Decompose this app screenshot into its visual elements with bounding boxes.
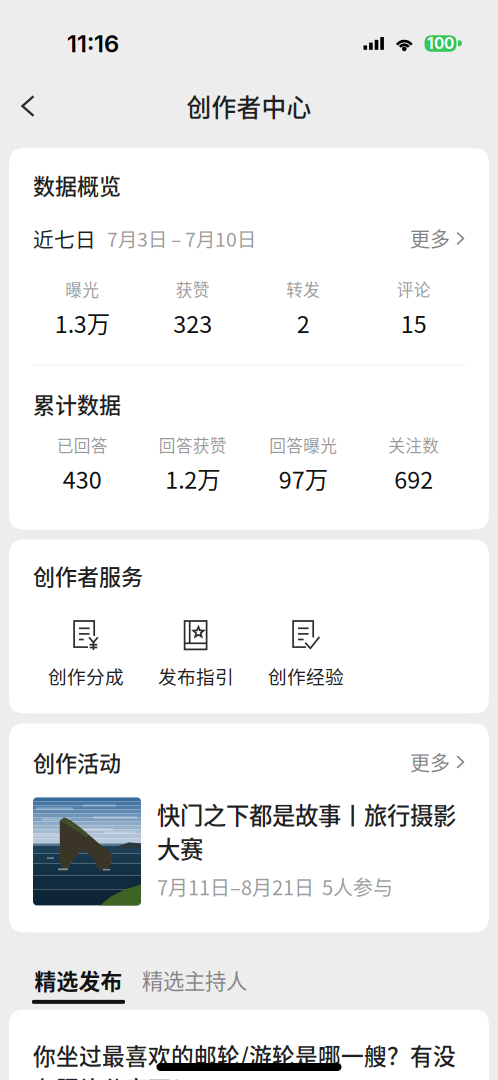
staticText: 692 [394, 462, 433, 496]
staticText: 创作经验 [268, 662, 344, 689]
staticText: 创作活动 [33, 746, 121, 778]
staticText: 获赞 [176, 277, 210, 301]
staticText: 精选发布 [34, 964, 122, 996]
staticText: 精选主持人 [142, 964, 247, 995]
staticText: 97万 [279, 462, 328, 496]
staticText: 近七日 [33, 223, 96, 253]
button[interactable]: 更多 [410, 744, 465, 779]
staticText: 7月11日–8月21日 5人参与 [157, 872, 393, 901]
staticText: 11:16 [67, 29, 119, 58]
button[interactable]: 精选发布 [32, 964, 125, 1004]
staticText: 7月3日 – 7月10日 [107, 224, 256, 252]
staticText: 323 [173, 306, 212, 340]
staticText: 回答获赞 [159, 433, 227, 457]
button[interactable]: 精选主持人 [142, 964, 247, 1003]
staticText: 1.3万 [55, 306, 110, 340]
button[interactable]: 创作经验 [251, 619, 361, 689]
staticText: 100 [427, 34, 454, 53]
button[interactable]: 快门之下都是故事丨旅行摄影大赛 [9, 779, 489, 932]
staticText: 关注数 [388, 433, 439, 457]
staticText: 更多 [410, 747, 450, 776]
staticText: 2 [297, 306, 310, 340]
staticText: 创作者中心 [186, 88, 311, 124]
button[interactable]: Back [0, 83, 55, 129]
staticText: 更多 [410, 224, 450, 253]
staticText: 转发 [286, 277, 320, 301]
staticText: 累计数据 [33, 388, 121, 420]
staticText: 已回答 [57, 433, 108, 457]
staticText: 15 [401, 306, 427, 340]
staticText: 1.2万 [165, 462, 220, 496]
staticText: 创作者服务 [33, 559, 143, 591]
staticText: 曝光 [65, 277, 99, 301]
staticText: 发布指引 [158, 662, 234, 689]
staticText: 430 [63, 462, 102, 496]
staticText: 评论 [397, 277, 431, 301]
button[interactable]: 创作分成 [31, 619, 141, 689]
staticText: 你坐过最喜欢的邮轮/游轮是哪一艘？有没有照片分享下？ [33, 1038, 456, 1080]
staticText: 创作分成 [48, 662, 124, 689]
staticText: 数据概览 [33, 169, 121, 201]
staticText: 回答曝光 [269, 433, 337, 457]
staticText: 快门之下都是故事丨旅行摄影大赛 [157, 797, 456, 865]
button[interactable]: 更多 [410, 221, 465, 256]
button[interactable]: 发布指引 [141, 619, 251, 689]
